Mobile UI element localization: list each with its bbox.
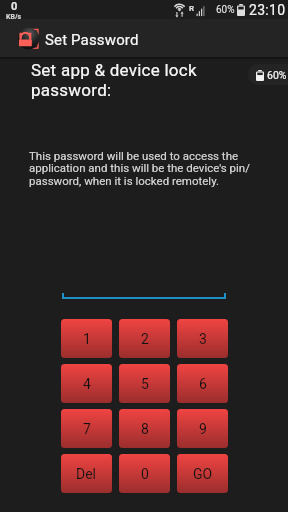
button[interactable]: 6: [177, 364, 228, 403]
button[interactable]: 2: [119, 319, 170, 358]
staticText: 6: [199, 376, 207, 392]
staticText: 5: [141, 376, 149, 392]
button[interactable]: 0: [119, 454, 170, 493]
staticText: 60%: [267, 69, 287, 81]
button[interactable]: 8: [119, 409, 170, 448]
staticText: 9: [199, 421, 207, 437]
staticText: 60%: [216, 4, 235, 16]
staticText: 4: [83, 376, 91, 392]
staticText: R: [189, 4, 195, 13]
button[interactable]: 5: [119, 364, 170, 403]
staticText: 23:10: [249, 2, 286, 18]
button[interactable]: 7: [61, 409, 112, 448]
button[interactable]: 4: [61, 364, 112, 403]
staticText: 8: [141, 421, 149, 437]
staticText: 0: [11, 0, 18, 13]
staticText: Set app & device lock password:: [31, 60, 197, 100]
staticText: 1: [83, 331, 91, 347]
button[interactable]: Del: [61, 454, 112, 493]
button[interactable]: 3: [177, 319, 228, 358]
staticText: 3: [199, 331, 207, 347]
staticText: KB/s: [6, 13, 22, 19]
staticText: This password will be used to access the…: [29, 149, 253, 188]
button[interactable]: 1: [61, 319, 112, 358]
button[interactable]: 9: [177, 409, 228, 448]
button[interactable]: GO: [177, 454, 228, 493]
staticText: GO: [193, 466, 213, 482]
staticText: Set Password: [45, 31, 139, 49]
staticText: Del: [76, 466, 97, 482]
staticText: 7: [83, 421, 91, 437]
staticText: 0: [141, 466, 149, 482]
staticText: 2: [141, 331, 149, 347]
